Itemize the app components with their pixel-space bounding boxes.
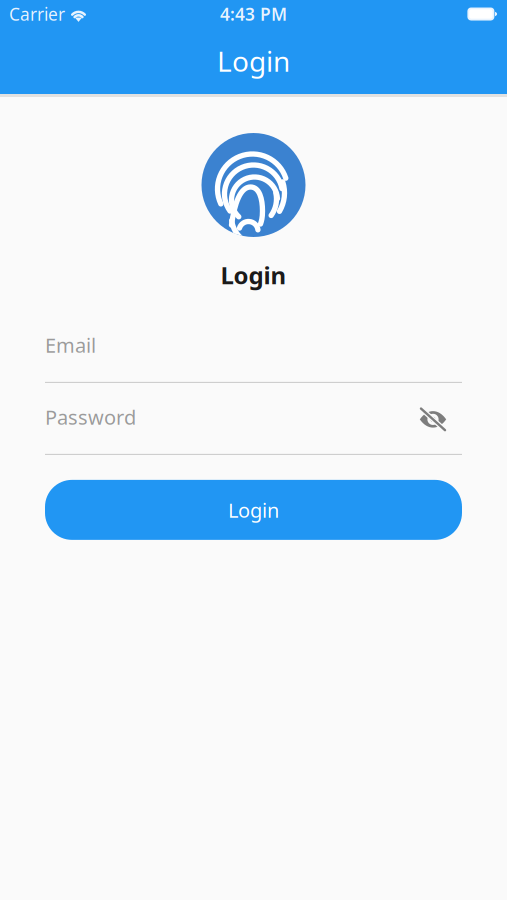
staticText: Login	[228, 497, 279, 523]
button[interactable]: Login	[45, 480, 462, 540]
staticText: Password	[45, 404, 136, 430]
staticText: Login	[220, 259, 286, 291]
staticText: Login	[217, 42, 290, 80]
staticText: Email	[45, 332, 96, 358]
staticText: Carrier	[9, 2, 65, 25]
staticText: 4:43 PM	[220, 2, 287, 25]
button[interactable]: Show password	[415, 397, 462, 436]
